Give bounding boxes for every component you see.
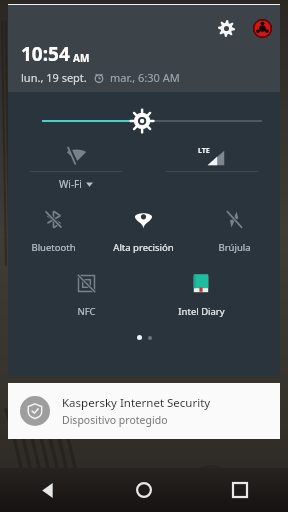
button[interactable]: Recent apps xyxy=(192,468,288,512)
staticText: Bluetooth xyxy=(31,241,76,254)
staticText: mar., 6:30 AM xyxy=(110,70,180,85)
button[interactable]: Alta precisión xyxy=(98,204,189,254)
button[interactable]: Intel Diary xyxy=(154,268,248,318)
staticText: Brújula xyxy=(218,241,251,254)
button[interactable]: Brightness xyxy=(8,109,280,133)
button[interactable]: Bluetooth xyxy=(8,204,98,254)
staticText: Wi-Fi xyxy=(59,177,82,191)
staticText: Intel Diary xyxy=(178,305,225,318)
staticText: NFC xyxy=(77,305,96,318)
staticText: 10:54 xyxy=(21,41,70,67)
staticText: Alta precisión xyxy=(113,241,174,254)
button[interactable]: NFC xyxy=(39,268,133,318)
button[interactable]: Mobile data xyxy=(144,140,280,177)
button[interactable]: Kaspersky Internet Security xyxy=(8,383,280,439)
button[interactable]: User profile xyxy=(248,14,276,42)
staticText: Kaspersky Internet Security xyxy=(62,395,211,411)
staticText: AM xyxy=(73,51,90,65)
button[interactable]: Settings xyxy=(212,14,240,42)
button[interactable]: Back xyxy=(0,468,96,512)
staticText: LTE xyxy=(198,146,210,156)
staticText: Dispositivo protegido xyxy=(62,413,168,427)
button[interactable]: Wi-Fi xyxy=(8,140,144,191)
button[interactable]: Brújula xyxy=(189,204,280,254)
button[interactable]: Home xyxy=(96,468,192,512)
staticText: lun., 19 sept. xyxy=(21,70,87,85)
